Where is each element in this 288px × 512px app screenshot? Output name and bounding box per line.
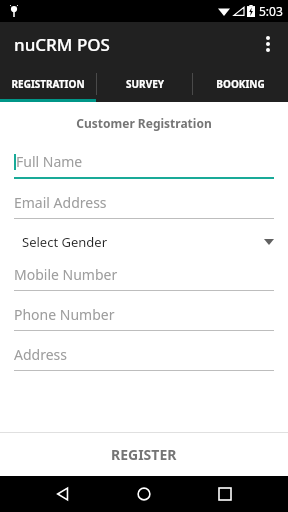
button[interactable]: Recent apps	[207, 476, 243, 512]
button[interactable]: SURVEY	[97, 66, 192, 102]
staticText: Customer Registration	[0, 115, 288, 131]
button[interactable]: Select Gender	[14, 233, 274, 251]
button[interactable]: Mobile Number	[14, 265, 274, 291]
staticText: 5:03	[259, 3, 283, 19]
staticText: REGISTER	[111, 445, 177, 464]
button[interactable]: BOOKING	[193, 66, 288, 102]
staticText: REGISTRATION	[11, 77, 85, 91]
staticText: Phone Number	[14, 305, 115, 324]
staticText: BOOKING	[216, 77, 265, 91]
button[interactable]: REGISTRATION	[0, 66, 96, 102]
button[interactable]: Home	[126, 476, 162, 512]
staticText: Mobile Number	[14, 265, 118, 284]
staticText: Select Gender	[22, 233, 107, 251]
button[interactable]: Email Address	[14, 193, 274, 219]
button[interactable]: Full Name	[14, 152, 274, 179]
button[interactable]: REGISTER	[0, 433, 288, 476]
staticText: nuCRM POS	[14, 33, 110, 56]
staticText: Address	[14, 345, 67, 364]
button[interactable]: More options	[248, 24, 288, 64]
button[interactable]: Back	[45, 476, 81, 512]
button[interactable]: Address	[14, 345, 274, 371]
staticText: SURVEY	[126, 77, 164, 91]
button[interactable]: Phone Number	[14, 305, 274, 331]
staticText: Full Name	[16, 152, 83, 171]
staticText: Email Address	[14, 193, 107, 212]
